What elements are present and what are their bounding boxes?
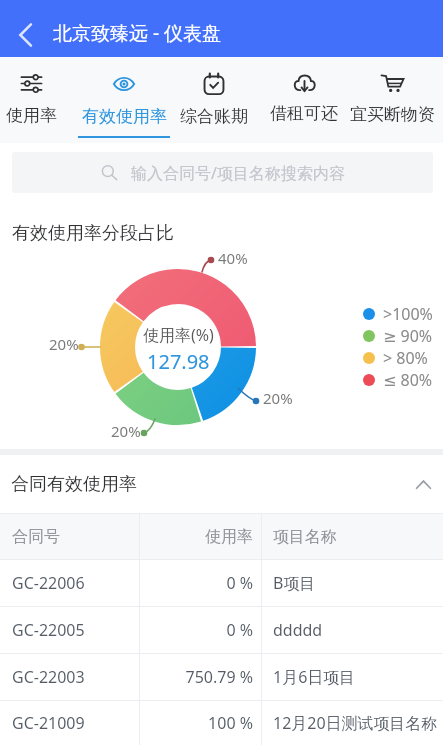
staticText: 100 % [143,712,253,734]
button[interactable]: GC-21009 [0,701,443,745]
staticText: 40% [218,248,248,268]
staticText: 20% [49,334,79,354]
staticText: 127.98 [147,348,210,375]
button[interactable]: 有效使用率 [78,57,170,143]
staticText: >100% [383,303,433,325]
staticText: 0 % [143,572,253,594]
button[interactable]: 宜买断物资 [342,57,443,143]
staticText: ≤ 80% [383,369,433,391]
staticText: 合同号 [12,527,143,547]
staticText: GC-22003 [12,666,143,688]
staticText: B项目 [273,572,316,594]
button[interactable]: GC-22006 [0,560,443,606]
staticText: ≥ 90% [383,325,433,347]
staticText: GC-22005 [12,619,143,641]
staticText: GC-21009 [12,712,143,734]
staticText: 宜买断物资 [350,104,435,125]
button[interactable]: GC-22003 [0,654,443,700]
staticText: 20% [263,388,293,408]
button[interactable]: 合同号 [0,514,443,559]
staticText: 借租可还 [270,103,338,124]
staticText: > 80% [383,347,428,369]
staticText: 0 % [143,619,253,641]
staticText: 有效使用率 [82,106,167,127]
staticText: 北京致臻远 - 仪表盘 [53,20,221,46]
staticText: 20% [111,421,141,441]
other: Collapse [416,480,431,489]
staticText: 有效使用率分段占比 [12,222,174,245]
button[interactable]: 使用率 [0,57,62,143]
staticText: 输入合同号/项目名称搜索内容 [131,162,345,184]
staticText: 750.79 % [143,666,253,688]
button[interactable]: Back [6,13,44,57]
staticText: 项目名称 [273,527,337,547]
staticText: 1月6日项目 [273,666,356,688]
staticText: GC-22006 [12,572,143,594]
staticText: 使用率 [6,105,57,126]
staticText: 合同有效使用率 [11,473,137,496]
staticText: 使用率 [143,527,253,547]
button[interactable]: 输入合同号/项目名称搜索内容 [12,152,433,193]
staticText: 综合账期 [180,106,248,127]
button[interactable]: 合同有效使用率 [11,455,431,513]
button[interactable]: GC-22005 [0,607,443,653]
staticText: 12月20日测试项目名称 [273,712,438,734]
staticText: 使用率(%) [143,324,214,346]
button[interactable]: 综合账期 [176,57,252,143]
staticText: ddddd [273,619,323,641]
button[interactable]: 借租可还 [266,57,342,143]
